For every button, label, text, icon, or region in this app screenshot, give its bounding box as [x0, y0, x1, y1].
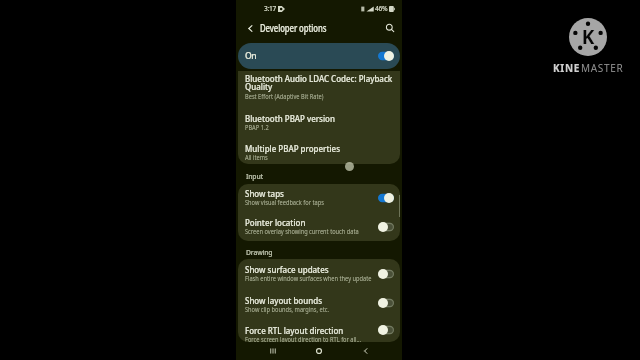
- button[interactable]: Home: [309, 342, 329, 360]
- staticText: Show visual feedback for taps: [245, 198, 324, 207]
- button[interactable]: Recents: [263, 342, 283, 360]
- button[interactable]: Show taps: [238, 184, 400, 212]
- staticText: Best Effort (Adaptive Bit Rate): [245, 92, 324, 101]
- button[interactable]: Pointer location: [238, 212, 400, 241]
- staticText: Bluetooth PBAP version: [245, 112, 335, 124]
- staticText: 46%: [375, 4, 388, 13]
- button[interactable]: Show layout bounds: [238, 288, 400, 318]
- staticText: MASTER: [581, 61, 624, 75]
- button[interactable]: Back: [243, 21, 258, 36]
- staticText: Show taps: [245, 187, 284, 199]
- button[interactable]: Search: [380, 18, 400, 38]
- button[interactable]: Back: [356, 342, 376, 360]
- staticText: Show clip bounds, margins, etc.: [245, 305, 329, 314]
- button[interactable]: Multiple PBAP properties: [238, 134, 400, 164]
- staticText: Drawing: [246, 248, 273, 257]
- staticText: Force RTL layout direction: [245, 324, 343, 336]
- staticText: Multiple PBAP properties: [245, 142, 341, 154]
- staticText: Flash entire window surfaces when they u…: [245, 274, 371, 283]
- staticText: All items: [245, 153, 268, 162]
- staticText: PBAP 1.2: [245, 123, 269, 132]
- staticText: KINE: [553, 61, 581, 75]
- button[interactable]: Bluetooth PBAP version: [238, 104, 400, 134]
- button[interactable]: Force RTL layout direction: [238, 318, 400, 342]
- button[interactable]: Bluetooth Audio LDAC Codec: Playback Qua…: [238, 71, 400, 104]
- staticText: Pointer location: [245, 216, 306, 228]
- button[interactable]: On: [238, 43, 400, 69]
- staticText: On: [245, 50, 257, 62]
- button[interactable]: Show surface updates: [238, 259, 400, 288]
- staticText: Developer options: [260, 22, 327, 35]
- staticText: Input: [246, 172, 263, 181]
- staticText: Bluetooth Audio LDAC Codec: Playback Qua…: [245, 72, 393, 93]
- staticText: Force screen layout direction to RTL for…: [245, 335, 361, 342]
- staticText: Show surface updates: [245, 263, 329, 275]
- staticText: Show layout bounds: [245, 294, 323, 306]
- staticText: 3:17: [264, 4, 276, 13]
- staticText: K: [569, 24, 607, 50]
- staticText: Screen overlay showing current touch dat…: [245, 227, 359, 236]
